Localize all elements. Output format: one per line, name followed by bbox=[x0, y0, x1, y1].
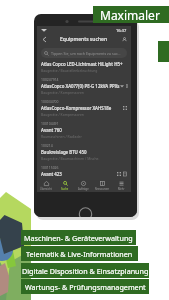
staticText: 16:37 bbox=[116, 28, 127, 33]
button[interactable]: 100034700 bbox=[37, 99, 131, 121]
staticText: Ressourcen bbox=[95, 187, 110, 191]
button[interactable]: Übersicht bbox=[37, 180, 55, 192]
button[interactable]: Telematik & Live-Informationen bbox=[21, 246, 138, 261]
button[interactable]: Aufträge bbox=[74, 180, 93, 192]
button[interactable]: 100247914 bbox=[37, 77, 131, 99]
button[interactable]: 100104491 bbox=[37, 121, 131, 143]
staticText: Aufträge bbox=[78, 187, 89, 191]
staticText: 100115026 bbox=[41, 165, 59, 170]
button[interactable]: Maximaler bbox=[93, 6, 169, 23]
staticText: Wartungs- & Prüfungsmanagement bbox=[25, 282, 146, 292]
button[interactable]: 100214 bbox=[37, 143, 131, 165]
staticText: Baugeräte / Kompressoren bbox=[41, 90, 84, 95]
button[interactable]: Maschinen- & Geräteverwaltung bbox=[21, 230, 136, 245]
staticText: Raumaschinen / Radlader bbox=[41, 134, 82, 139]
staticText: Equipments suchen bbox=[60, 36, 108, 43]
staticText: Baukreislage BTU 450 bbox=[41, 149, 87, 155]
staticText: Tippen Sie, um nach Equipments zu suc... bbox=[51, 51, 121, 56]
button[interactable]: Suche bbox=[55, 180, 74, 192]
staticText: 100104491 bbox=[41, 121, 59, 126]
staticText: Maximaler bbox=[100, 7, 160, 23]
staticText: Telematik & Live-Informationen bbox=[26, 249, 133, 259]
button[interactable]: Atlas Copco LED-Lichtmast HiLight H5+ bbox=[37, 61, 131, 77]
staticText: 100034700 bbox=[41, 99, 59, 104]
staticText: Avant 423 bbox=[41, 171, 62, 177]
staticText: Mehr bbox=[118, 187, 125, 191]
staticText: Digitale Disposition & Einsatzplanung bbox=[22, 266, 149, 276]
button[interactable]: Back bbox=[40, 35, 48, 43]
staticText: Avant 760 bbox=[41, 127, 62, 133]
button[interactable]: Profile bbox=[120, 35, 128, 43]
staticText: Baugeräte / Baustellenbeleuchtung bbox=[41, 68, 98, 73]
button[interactable]: Tippen Sie, um nach Equipments zu suc... bbox=[41, 48, 127, 58]
button[interactable]: Wartungs- & Prüfungsmanagement bbox=[21, 279, 149, 294]
staticText: Maschinen- & Geräteverwaltung bbox=[24, 233, 133, 243]
staticText: AtlasCopco-Kompressor XAHS18e bbox=[41, 105, 112, 111]
staticText: Baugeräte / Baumaschinen / Mische. bbox=[41, 156, 100, 161]
staticText: AtlasCopco XA0?7(0) PE-G 12kVA PPXs bbox=[41, 83, 120, 89]
button[interactable]: Mehr bbox=[112, 180, 131, 192]
staticText: Baugeräte / Kompressoren bbox=[41, 112, 84, 117]
staticText: 100247914 bbox=[41, 77, 59, 82]
staticText: Suche bbox=[61, 187, 69, 191]
button[interactable]: Ressourcen bbox=[93, 180, 112, 192]
staticText: 100214 bbox=[41, 143, 53, 148]
staticText: Übersicht bbox=[40, 187, 52, 191]
button[interactable]: Digitale Disposition & Einsatzplanung bbox=[21, 263, 149, 278]
staticText: Atlas Copco LED-Lichtmast HiLight H5+ bbox=[41, 61, 123, 67]
button[interactable]: 100115026 bbox=[37, 165, 131, 181]
